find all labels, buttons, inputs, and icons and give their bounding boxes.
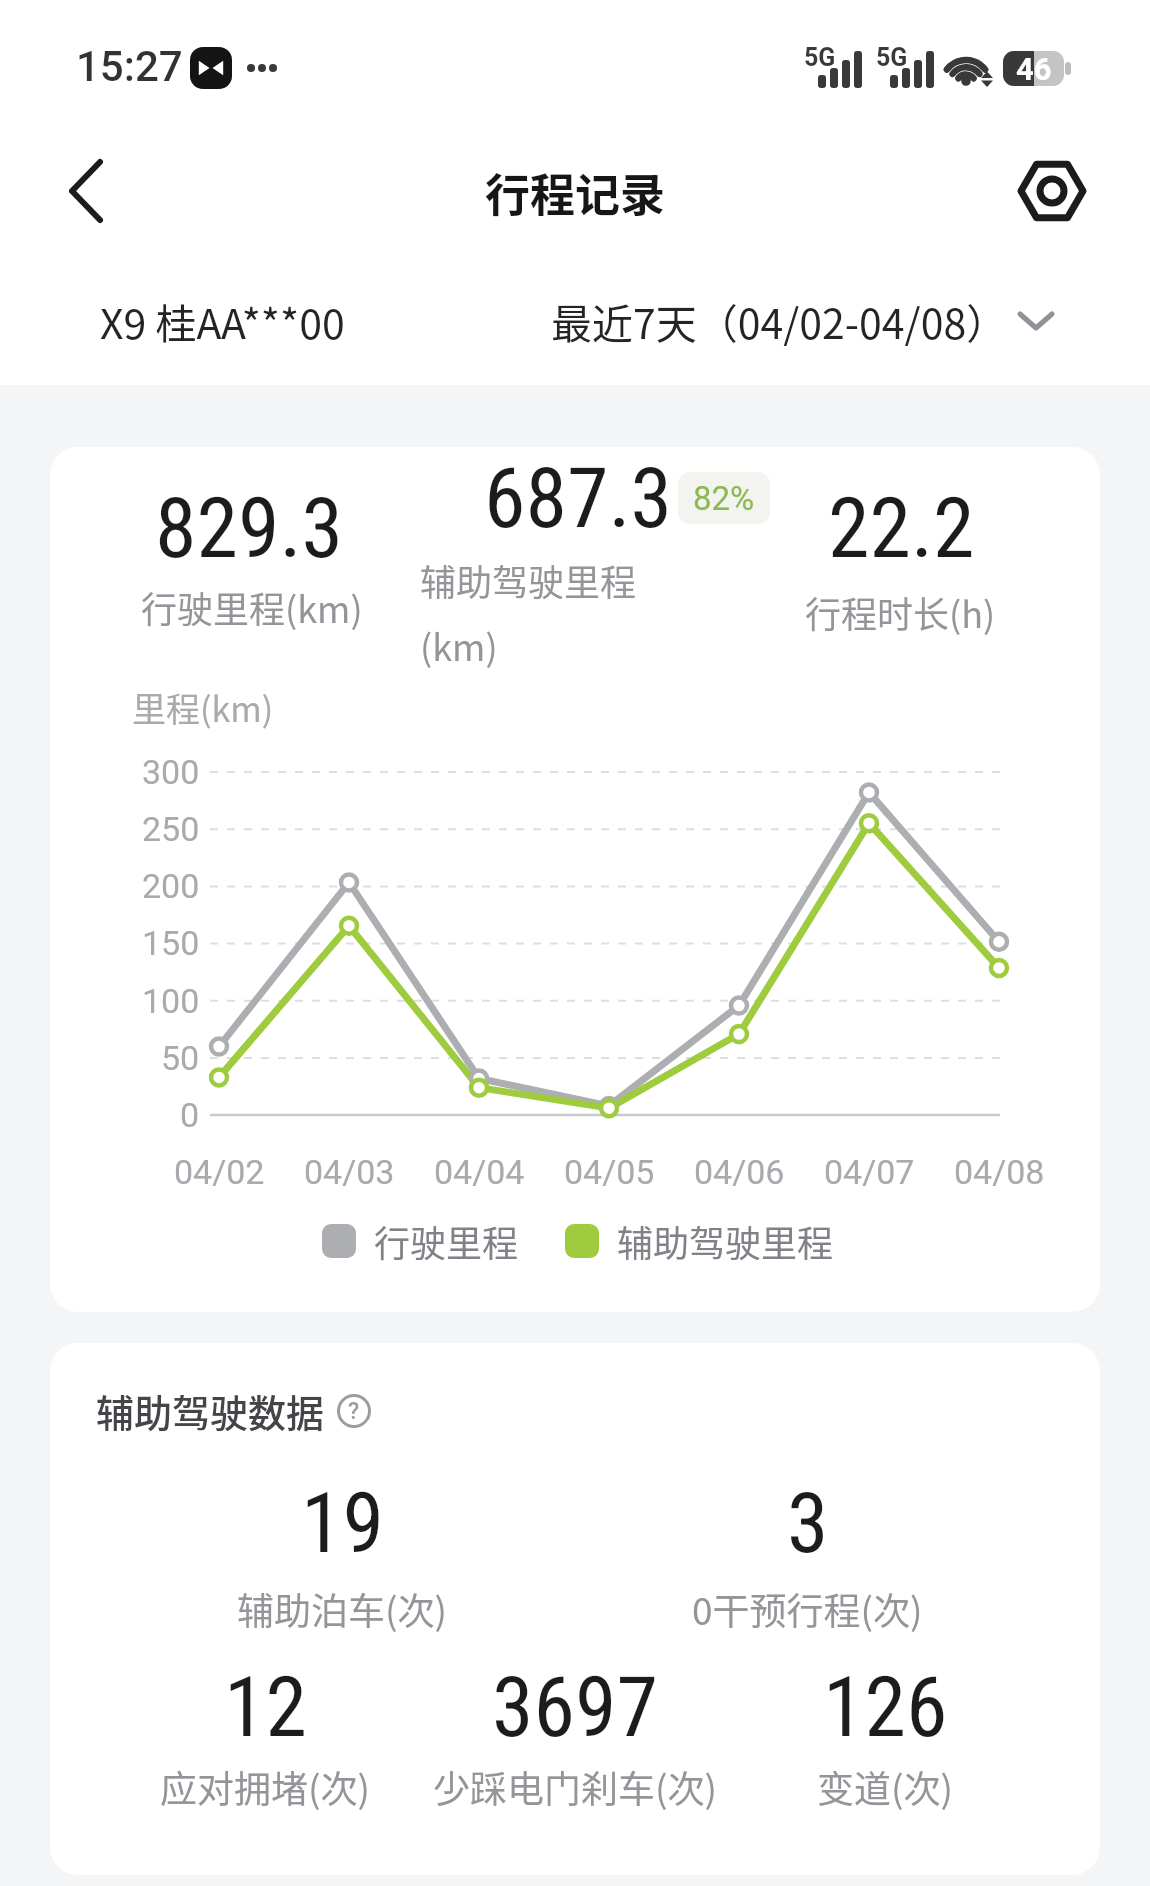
staticText: 3 [787, 1474, 829, 1572]
staticText: 行程时长(h) [805, 586, 996, 638]
staticText: 辅助驾驶里程 [617, 1215, 834, 1267]
staticText: 0干预行程(次) [692, 1582, 923, 1636]
button[interactable] [1014, 152, 1090, 228]
staticText: 250 [142, 809, 200, 849]
staticText: 12 [224, 1658, 307, 1756]
staticText: 辅助驾驶数据 [96, 1383, 325, 1438]
staticText: 15:27 [76, 42, 183, 91]
staticText: 辅助泊车(次) [237, 1582, 448, 1636]
staticText: 应对拥堵(次) [160, 1760, 371, 1814]
staticText: 辅助驾驶里程 [420, 554, 637, 606]
staticText: 126 [823, 1658, 948, 1756]
staticText: 22.2 [828, 479, 975, 577]
staticText: 19 [301, 1474, 384, 1572]
staticText: 50 [161, 1038, 200, 1078]
staticText: 行驶里程 [374, 1215, 519, 1267]
staticText: 04/06 [694, 1152, 785, 1192]
staticText: ? [348, 1398, 360, 1425]
staticText: 5G [876, 43, 908, 72]
staticText: 3697 [492, 1658, 658, 1756]
staticText: 里程(km) [132, 683, 274, 732]
button[interactable]: ? [337, 1394, 371, 1428]
staticText: 100 [142, 981, 200, 1021]
staticText: 少踩电门刹车(次) [433, 1760, 718, 1814]
button[interactable]: X9 桂AA***00 [90, 275, 410, 365]
staticText: 变道(次) [817, 1760, 954, 1814]
staticText: 04/03 [304, 1152, 395, 1192]
staticText: 46 [1016, 51, 1052, 86]
staticText: 04/07 [824, 1152, 915, 1192]
staticText: 行程记录 [485, 160, 666, 225]
staticText: 0 [180, 1095, 200, 1135]
button[interactable]: 最近7天（04/02-04/08） [500, 275, 1060, 365]
staticText: 300 [142, 752, 200, 792]
staticText: 82% [693, 479, 755, 518]
button[interactable] [52, 148, 122, 234]
staticText: 最近7天（04/02-04/08） [551, 291, 1008, 350]
staticText: X9 桂AA***00 [100, 291, 345, 350]
staticText: 200 [142, 866, 200, 906]
staticText: 5G [804, 43, 836, 72]
staticText: 04/08 [954, 1152, 1045, 1192]
staticText: (km) [420, 619, 498, 671]
staticText: 150 [142, 923, 200, 963]
staticText: 04/02 [174, 1152, 265, 1192]
staticText: 04/05 [564, 1152, 655, 1192]
staticText: 687.3 [484, 449, 673, 547]
staticText: 行驶里程(km) [141, 581, 363, 633]
staticText: 829.3 [155, 479, 344, 577]
staticText: 04/04 [434, 1152, 525, 1192]
